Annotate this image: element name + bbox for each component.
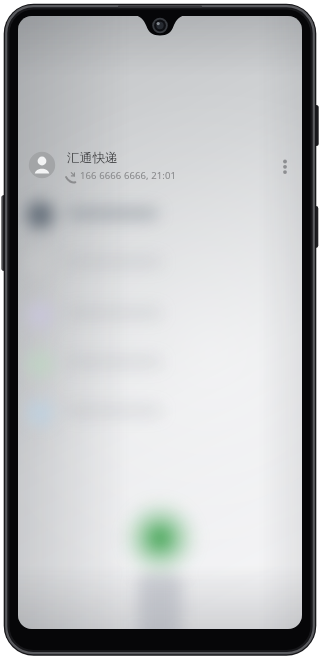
staticText: 汇通快递 bbox=[67, 150, 118, 166]
button[interactable]: 汇通快递 bbox=[24, 146, 296, 190]
button[interactable] bbox=[136, 514, 184, 562]
staticText: 166 6666 6666, 21:01 bbox=[80, 169, 177, 182]
